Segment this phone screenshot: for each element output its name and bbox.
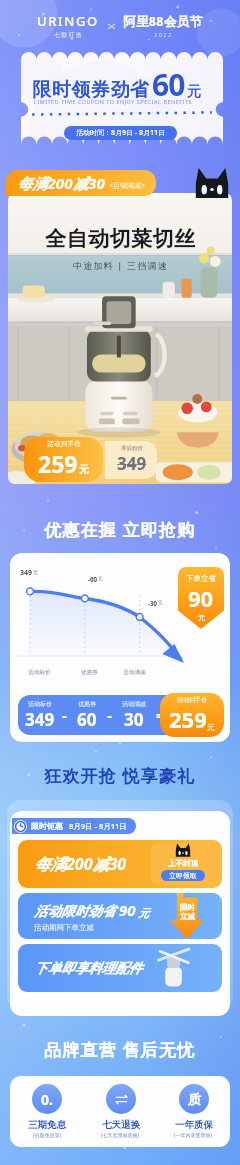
staticText: 259 xyxy=(38,448,78,479)
staticText: -60 xyxy=(88,575,98,583)
staticText: 券后粉价 xyxy=(121,445,143,452)
staticText: 30 xyxy=(124,708,144,731)
staticText: 活动时间：8月9日 - 8月11日 xyxy=(76,128,165,138)
button[interactable]: 限时钜惠 xyxy=(14,818,127,834)
button[interactable]: 活动限时劲省 xyxy=(18,893,222,939)
staticText: 质 xyxy=(188,1091,201,1107)
button[interactable]: 立即领取 xyxy=(169,871,197,880)
other: Tmall cat xyxy=(175,843,191,859)
button[interactable]: 活动到手价 xyxy=(169,696,215,734)
staticText: 90 xyxy=(119,900,136,920)
other: Tmall cat xyxy=(194,167,230,203)
staticText: 元 xyxy=(79,463,89,476)
button[interactable]: 质 xyxy=(157,1084,230,1139)
staticText: 2022 xyxy=(154,31,173,38)
staticText: 元 xyxy=(33,569,38,575)
staticText: 限时领券劲省 xyxy=(32,78,149,102)
staticText: URINGO xyxy=(37,12,99,30)
staticText: 限时 xyxy=(180,903,195,912)
button[interactable]: 下单即享料理配件 xyxy=(18,944,222,992)
staticText: = xyxy=(156,705,165,725)
staticText: 立即领取 xyxy=(169,871,197,880)
staticText: 活动期间下单立减 xyxy=(34,923,94,932)
staticText: 三期免息 xyxy=(28,1119,66,1131)
staticText: 下单立省 xyxy=(186,574,216,583)
staticText: 349 xyxy=(20,568,33,578)
staticText: 活动标价 xyxy=(12,669,67,676)
staticText: 七彩叮当 xyxy=(54,31,83,39)
staticText: 七天退换 xyxy=(102,1119,140,1131)
button[interactable]: 七天退换 xyxy=(84,1084,157,1139)
staticText: 259 xyxy=(169,704,207,734)
staticText: 一年质保 xyxy=(175,1119,213,1131)
staticText: 中途加料 | 三挡调速 xyxy=(73,259,168,271)
staticText: -30 xyxy=(148,599,158,607)
staticText: 元 xyxy=(158,600,163,606)
staticText: 阿里88会员节 xyxy=(123,13,203,30)
staticText: 全自动切菜切丝 xyxy=(45,226,196,252)
staticText: LIMITED TIME COUPON TO ENJOY SPECIAL BEN… xyxy=(34,98,192,105)
staticText: 每满200减30 xyxy=(34,853,127,875)
staticText: (一年内享受质保) xyxy=(174,1132,213,1139)
staticText: 活动到手价 xyxy=(177,696,207,704)
staticText: 8月9日 - 8月11日 xyxy=(69,821,127,831)
staticText: 狂欢开抢 悦享豪礼 xyxy=(44,764,196,787)
staticText: 立减 xyxy=(180,912,195,921)
staticText: <店铺满减> xyxy=(109,181,146,191)
staticText: 品牌直营 售后无忧 xyxy=(44,1038,196,1061)
staticText: 90 xyxy=(188,583,214,613)
staticText: 每满200减30 xyxy=(17,173,105,193)
staticText: 元 xyxy=(187,83,201,101)
button[interactable]: 每满200减30 xyxy=(18,840,222,888)
staticText: - xyxy=(107,705,112,725)
button[interactable]: 活动标价 xyxy=(18,695,216,735)
staticText: 活动限时劲省 xyxy=(34,903,115,920)
staticText: 优惠券 xyxy=(67,669,112,676)
staticText: 元 xyxy=(207,722,215,732)
staticText: 限时钜惠 xyxy=(31,821,63,831)
staticText: 优惠在握 立即抢购 xyxy=(44,518,196,541)
staticText: 349 xyxy=(25,708,55,731)
button[interactable]: 活动到手价 xyxy=(38,440,89,479)
staticText: 活动到手价 xyxy=(47,440,81,448)
button[interactable]: 活动时间：8月9日 - 8月11日 xyxy=(76,128,165,138)
staticText: 349 xyxy=(117,452,147,475)
staticText: 元 xyxy=(98,576,103,582)
button[interactable]: 0. xyxy=(10,1084,84,1139)
staticText: 活动标价 xyxy=(28,700,52,708)
staticText: 活动满减 xyxy=(122,700,146,708)
staticText: 上不封顶 xyxy=(168,859,198,868)
staticText: (七天无理由退换) xyxy=(101,1132,140,1139)
staticText: 元 xyxy=(138,906,149,920)
staticText: (分期免息等) xyxy=(33,1132,62,1139)
button[interactable]: 下单立省 xyxy=(178,567,224,629)
staticText: 优惠券 xyxy=(78,700,96,708)
staticText: - xyxy=(62,705,67,725)
staticText: 60 xyxy=(152,64,185,105)
staticText: 下单即享料理配件 xyxy=(34,960,142,977)
staticText: 活动满减 xyxy=(112,669,157,676)
button[interactable]: 每满200减30 xyxy=(17,173,146,193)
staticText: 0. xyxy=(41,1090,53,1109)
staticText: 元 xyxy=(198,613,205,622)
staticText: 60 xyxy=(77,708,97,731)
